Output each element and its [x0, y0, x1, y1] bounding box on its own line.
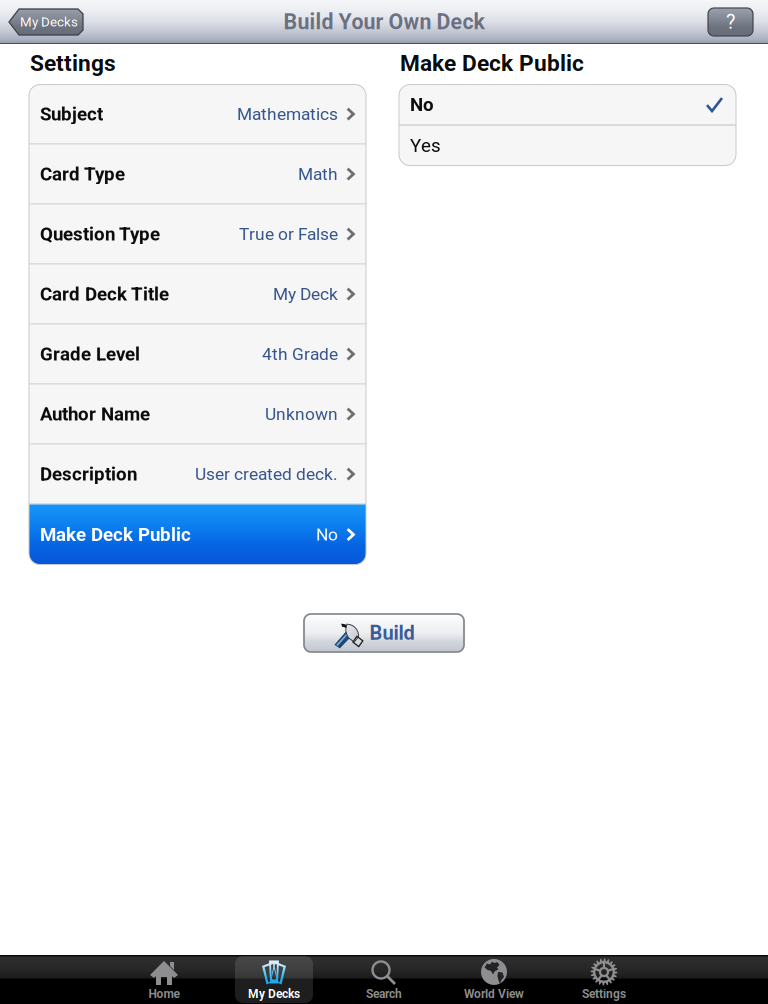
button[interactable]: My Decks	[8, 8, 84, 36]
button[interactable]: Search	[329, 955, 439, 1004]
staticText: Settings	[30, 50, 116, 77]
button[interactable]: No	[399, 85, 736, 125]
staticText: Card Deck Title	[40, 283, 169, 305]
button[interactable]: Build	[304, 614, 464, 652]
staticText: User created deck.	[195, 464, 338, 484]
button[interactable]: Make Deck Public	[29, 505, 366, 565]
staticText: No	[410, 94, 434, 115]
staticText: Home	[148, 987, 179, 1001]
button[interactable]: Card Type	[29, 145, 366, 204]
staticText: My Decks	[20, 14, 78, 30]
staticText: Build	[369, 621, 414, 645]
button[interactable]: Subject	[29, 85, 366, 144]
button[interactable]: Yes	[399, 126, 736, 166]
staticText: No	[316, 524, 338, 545]
staticText: True or False	[239, 224, 338, 244]
staticText: ?	[726, 10, 735, 34]
button[interactable]: Settings	[549, 955, 659, 1004]
button[interactable]: ?	[708, 8, 753, 36]
staticText: Yes	[410, 135, 441, 156]
button[interactable]: Description	[29, 445, 366, 504]
staticText: Math	[298, 164, 338, 184]
staticText: Description	[40, 463, 137, 485]
button[interactable]: Question Type	[29, 205, 366, 264]
button[interactable]: Home	[109, 955, 219, 1004]
staticText: Build Your Own Deck	[283, 9, 484, 34]
button[interactable]: Author Name	[29, 385, 366, 444]
staticText: Subject	[40, 103, 103, 125]
staticText: Settings	[582, 987, 626, 1001]
button[interactable]: Card Deck Title	[29, 265, 366, 324]
staticText: Grade Level	[40, 343, 140, 365]
staticText: Make Deck Public	[40, 524, 191, 545]
staticText: Unknown	[265, 404, 338, 424]
staticText: Card Type	[40, 163, 125, 185]
button[interactable]: Grade Level	[29, 325, 366, 384]
staticText: My Deck	[273, 284, 338, 304]
staticText: Mathematics	[237, 104, 338, 124]
staticText: Question Type	[40, 223, 160, 245]
staticText: Search	[366, 987, 402, 1001]
staticText: Author Name	[40, 403, 150, 425]
staticText: World View	[464, 987, 524, 1001]
button[interactable]: My Decks	[219, 955, 329, 1004]
button[interactable]: World View	[439, 955, 549, 1004]
staticText: 4th Grade	[262, 344, 338, 364]
staticText: My Decks	[248, 987, 300, 1001]
staticText: Make Deck Public	[400, 50, 584, 77]
